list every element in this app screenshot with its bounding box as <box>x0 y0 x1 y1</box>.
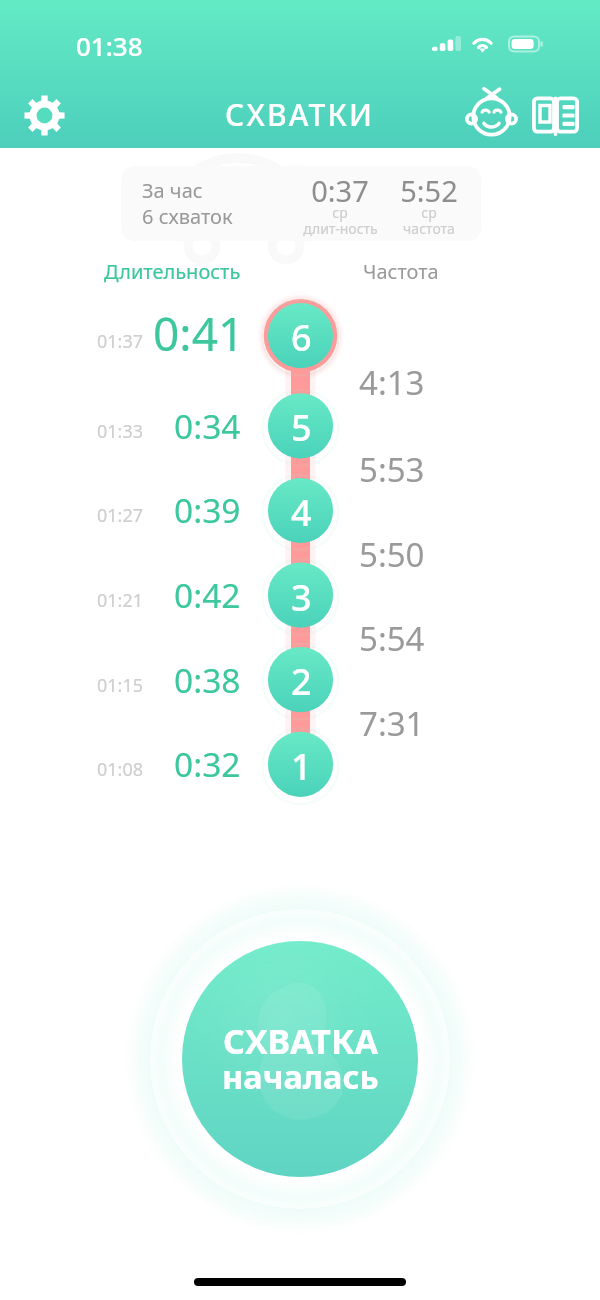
staticText: 01:38 <box>76 28 143 63</box>
staticText: 0:38 <box>174 657 241 703</box>
staticText: 0:41 <box>153 302 245 365</box>
staticText: За час <box>142 177 203 204</box>
staticText: длит-ность <box>303 219 378 238</box>
staticText: 7:31 <box>359 701 425 746</box>
staticText: началась <box>222 1054 379 1098</box>
staticText: СХВАТКА <box>223 1018 378 1064</box>
staticText: 5:52 <box>400 171 458 210</box>
staticText: частота <box>403 219 455 238</box>
staticText: 0:37 <box>311 171 369 210</box>
button[interactable]: Guide <box>527 87 584 144</box>
staticText: 0:42 <box>174 572 241 618</box>
staticText: 5:50 <box>359 532 425 577</box>
staticText: 01:33 <box>97 419 144 444</box>
staticText: ср <box>421 203 437 222</box>
staticText: 01:27 <box>97 503 144 528</box>
button[interactable] <box>110 869 490 1249</box>
staticText: 5:53 <box>359 447 425 492</box>
staticText: 01:15 <box>97 673 144 698</box>
button[interactable]: За час <box>121 166 481 241</box>
staticText: 5 <box>291 403 312 452</box>
staticText: 1 <box>291 742 312 791</box>
button[interactable]: Settings <box>16 87 73 144</box>
staticText: 4 <box>291 488 312 537</box>
staticText: 0:39 <box>174 487 241 533</box>
staticText: 0:34 <box>174 403 241 449</box>
staticText: Длительность <box>104 258 241 285</box>
staticText: ср <box>332 203 348 222</box>
staticText: 6 схваток <box>142 203 233 230</box>
staticText: СХВАТКИ <box>225 94 375 135</box>
staticText: 3 <box>291 573 312 622</box>
staticText: Частота <box>363 258 439 285</box>
staticText: 01:08 <box>97 757 144 782</box>
staticText: 5:54 <box>359 616 425 661</box>
staticText: 4:13 <box>359 360 425 405</box>
staticText: 6 <box>291 313 312 362</box>
staticText: 2 <box>291 657 312 706</box>
staticText: 01:21 <box>97 588 144 613</box>
staticText: 01:37 <box>97 329 144 354</box>
button[interactable]: Baby profile <box>463 88 520 145</box>
staticText: 0:32 <box>174 741 241 787</box>
